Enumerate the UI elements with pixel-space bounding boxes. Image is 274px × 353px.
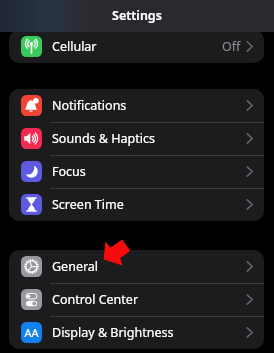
staticText: Control Center bbox=[52, 291, 139, 308]
button[interactable]: Notifications bbox=[9, 89, 264, 122]
staticText: General bbox=[52, 258, 99, 275]
button[interactable]: Focus bbox=[9, 155, 264, 188]
staticText: Screen Time bbox=[52, 196, 124, 213]
button[interactable]: Sounds & Haptics bbox=[9, 122, 264, 155]
staticText: Sounds & Haptics bbox=[52, 130, 155, 147]
staticText: Notifications bbox=[52, 97, 127, 114]
staticText: AA bbox=[24, 325, 39, 340]
staticText: Display & Brightness bbox=[52, 324, 174, 341]
staticText: Focus bbox=[52, 163, 86, 180]
button[interactable]: Cellular bbox=[9, 30, 264, 63]
button[interactable]: General bbox=[9, 250, 264, 283]
staticText: Settings bbox=[112, 7, 162, 24]
button[interactable]: AA bbox=[9, 316, 264, 349]
staticText: Cellular bbox=[52, 38, 97, 55]
staticText: Off bbox=[222, 38, 241, 55]
button[interactable]: Screen Time bbox=[9, 188, 264, 221]
button[interactable]: Control Center bbox=[9, 283, 264, 316]
